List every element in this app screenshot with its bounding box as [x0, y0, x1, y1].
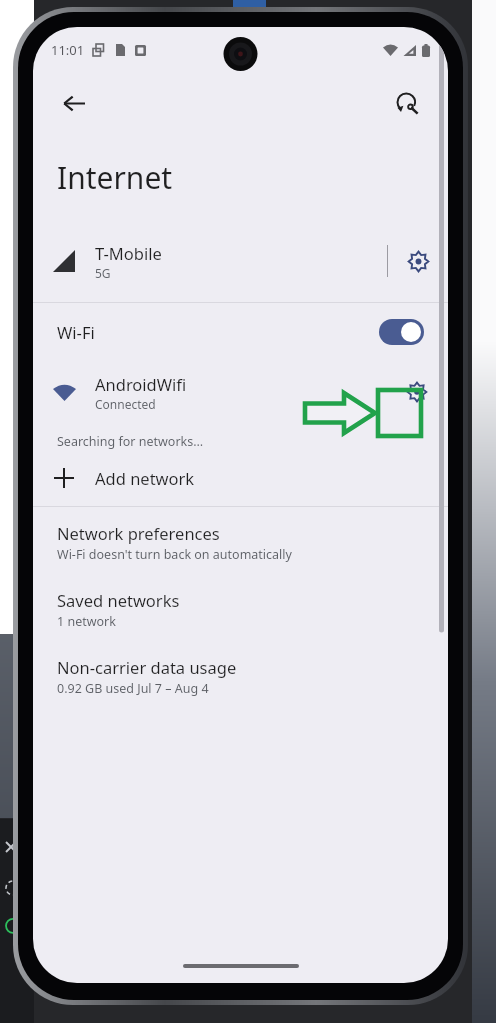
button[interactable]: Add network — [33, 450, 448, 506]
button[interactable]: Non-carrier data usage — [33, 641, 448, 708]
button[interactable]: Back — [53, 82, 95, 124]
staticText: 1 network — [57, 613, 116, 630]
button[interactable]: Wi-Fi — [33, 303, 448, 361]
button[interactable]: Mobile network settings — [388, 232, 448, 290]
staticText: Add network — [95, 467, 195, 489]
staticText: T-Mobile — [95, 242, 162, 264]
staticText: Non-carrier data usage — [57, 656, 237, 678]
staticText: Connected — [95, 396, 156, 412]
staticText: 11:01 — [51, 41, 85, 59]
staticText: 5G — [95, 265, 111, 281]
staticText: Network preferences — [57, 522, 220, 544]
staticText: Wi-Fi — [57, 321, 95, 343]
staticText: Wi-Fi doesn't turn back on automatically — [57, 546, 292, 563]
staticText: Internet — [57, 157, 173, 198]
staticText: Saved networks — [57, 589, 180, 611]
button[interactable]: AndroidWifi — [33, 361, 448, 423]
staticText: Searching for networks… — [57, 433, 204, 450]
staticText: AndroidWifi — [95, 373, 187, 395]
button[interactable]: Network preferences — [33, 507, 448, 574]
button[interactable]: T-Mobile — [33, 230, 448, 292]
button[interactable]: Reset and troubleshoot — [386, 82, 428, 124]
button[interactable]: Saved networks — [33, 574, 448, 641]
staticText: 0.92 GB used Jul 7 – Aug 4 — [57, 680, 209, 697]
button[interactable]: Wi-Fi network settings — [386, 363, 448, 421]
